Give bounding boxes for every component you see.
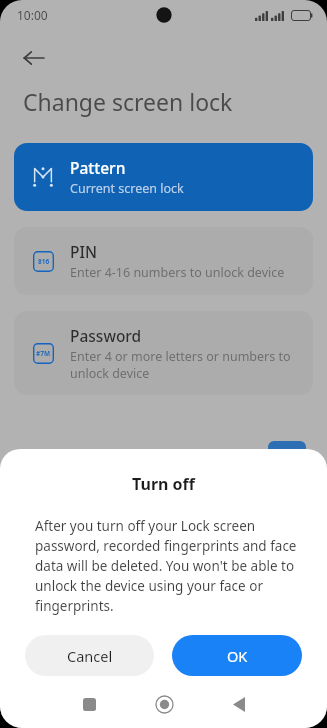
button[interactable]: Cancel (25, 635, 154, 676)
staticText: Current screen lock (70, 180, 184, 197)
button[interactable]: Recent apps (65, 680, 113, 728)
staticText: Enter 4-16 numbers to unlock device (70, 264, 285, 281)
staticText: After you turn off your Lock screen pass… (35, 517, 297, 615)
staticText: Password (70, 325, 142, 346)
staticText: Enter 4 or more letters or numbers to un… (70, 348, 299, 381)
button[interactable]: Home (140, 680, 188, 728)
button[interactable]: OK (172, 635, 302, 676)
staticText: PIN (70, 241, 97, 262)
staticText: #7M (36, 349, 51, 358)
button[interactable]: Pattern (14, 143, 313, 211)
staticText: Pattern (70, 157, 126, 178)
button[interactable]: #7M (14, 311, 313, 395)
button[interactable]: Back (215, 680, 263, 728)
button[interactable]: 816 (14, 227, 313, 295)
staticText: Turn off (0, 473, 327, 495)
button[interactable]: Back (12, 36, 56, 80)
staticText: Cancel (67, 646, 113, 666)
staticText: OK (227, 646, 248, 666)
staticText: Change screen lock (23, 86, 233, 117)
staticText: 816 (38, 257, 50, 266)
staticText: 10:00 (17, 7, 48, 23)
